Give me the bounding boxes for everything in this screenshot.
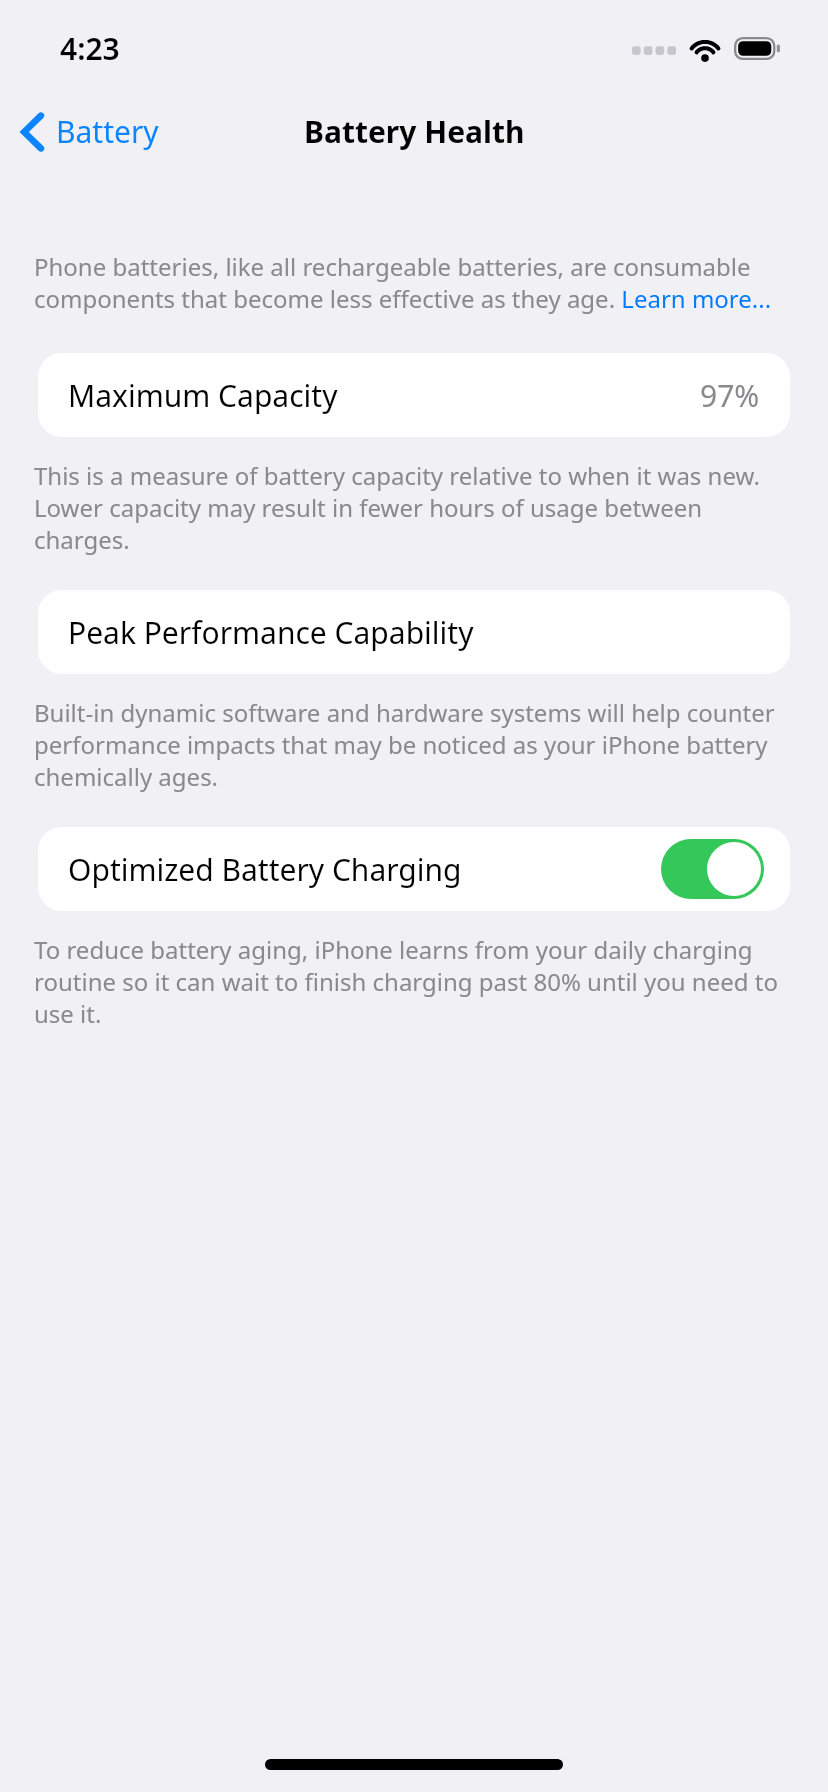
- staticText: Maximum Capacity: [68, 375, 338, 416]
- button[interactable]: Battery: [0, 103, 175, 160]
- staticText: 4:23: [60, 28, 120, 69]
- staticText: Phone batteries, like all rechargeable b…: [34, 250, 794, 315]
- button[interactable]: Optimized Battery Charging toggle: [661, 839, 764, 899]
- staticText: Built-in dynamic software and hardware s…: [34, 696, 794, 793]
- button[interactable]: Maximum Capacity: [38, 353, 790, 437]
- staticText: Optimized Battery Charging: [68, 849, 462, 890]
- staticText: Battery: [56, 111, 159, 152]
- staticText: Peak Performance Capability: [68, 612, 474, 653]
- staticText: Battery Health: [304, 111, 525, 152]
- button[interactable]: Peak Performance Capability: [38, 590, 790, 674]
- button[interactable]: Optimized Battery Charging: [38, 827, 790, 911]
- staticText: To reduce battery aging, iPhone learns f…: [34, 933, 794, 1030]
- staticText: 97%: [700, 375, 760, 416]
- staticText: This is a measure of battery capacity re…: [34, 459, 794, 556]
